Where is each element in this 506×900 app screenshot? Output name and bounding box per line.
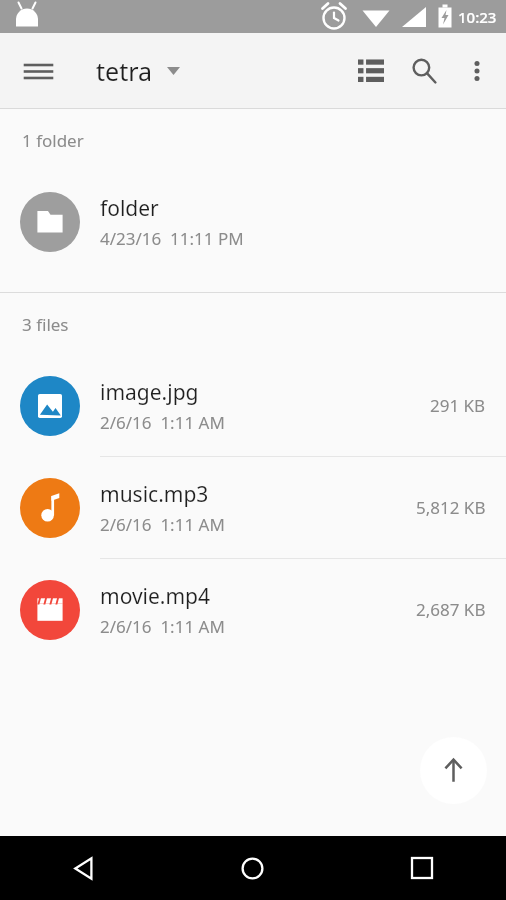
button[interactable]: image.jpg	[0, 355, 506, 456]
staticText: 291 KB	[430, 394, 486, 417]
button[interactable]: music.mp3	[0, 457, 506, 558]
staticText: movie.mp4	[100, 582, 211, 611]
staticText: tetra	[96, 54, 153, 88]
button[interactable]: Recent apps	[337, 836, 506, 900]
button[interactable]: Back	[0, 836, 168, 900]
button[interactable]: Upload	[420, 737, 487, 804]
button[interactable]: tetra	[88, 46, 188, 96]
button[interactable]: Search	[397, 44, 450, 97]
button[interactable]: Menu	[12, 45, 64, 97]
button[interactable]: More options	[450, 44, 503, 97]
staticText: 1 folder	[22, 129, 84, 152]
button[interactable]: folder	[0, 171, 506, 272]
button[interactable]: Home	[168, 836, 337, 900]
staticText: 5,812 KB	[416, 496, 486, 519]
staticText: folder	[100, 194, 159, 223]
button[interactable]: List view	[344, 44, 397, 97]
staticText: 3 files	[22, 313, 69, 336]
staticText: 4/23/16 11:11 PM	[100, 227, 244, 250]
staticText: 2/6/16 1:11 AM	[100, 513, 225, 536]
button[interactable]: movie.mp4	[0, 559, 506, 660]
staticText: 2/6/16 1:11 AM	[100, 615, 225, 638]
staticText: 2,687 KB	[416, 598, 486, 621]
staticText: 2/6/16 1:11 AM	[100, 411, 225, 434]
staticText: 10:23	[458, 7, 497, 27]
staticText: music.mp3	[100, 480, 209, 509]
staticText: image.jpg	[100, 378, 199, 407]
